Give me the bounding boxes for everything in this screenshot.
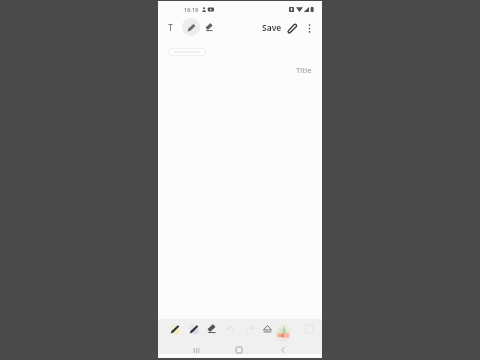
staticText: T	[168, 21, 174, 33]
button[interactable]: Back	[277, 344, 289, 356]
button[interactable]: Pen	[167, 321, 182, 336]
button[interactable]: Colors	[276, 324, 291, 339]
button[interactable]: Eraser	[204, 321, 219, 336]
button[interactable]: More options	[300, 19, 318, 37]
button[interactable]: Eraser tool	[200, 18, 218, 36]
button[interactable]: Text tool	[162, 18, 180, 36]
staticText: Save	[262, 22, 282, 34]
button[interactable]: Notebook	[168, 48, 206, 56]
button[interactable]: Shapes	[260, 321, 275, 336]
staticText: Title	[296, 65, 312, 76]
button[interactable]: Attach	[283, 19, 301, 37]
button[interactable]: Save	[258, 19, 286, 37]
button[interactable]: Pen tool	[182, 18, 200, 36]
button[interactable]: Highlighter	[186, 321, 201, 336]
staticText: 16:19	[184, 6, 199, 13]
button[interactable]: Home	[233, 344, 245, 356]
button[interactable]: Recents	[190, 344, 202, 356]
